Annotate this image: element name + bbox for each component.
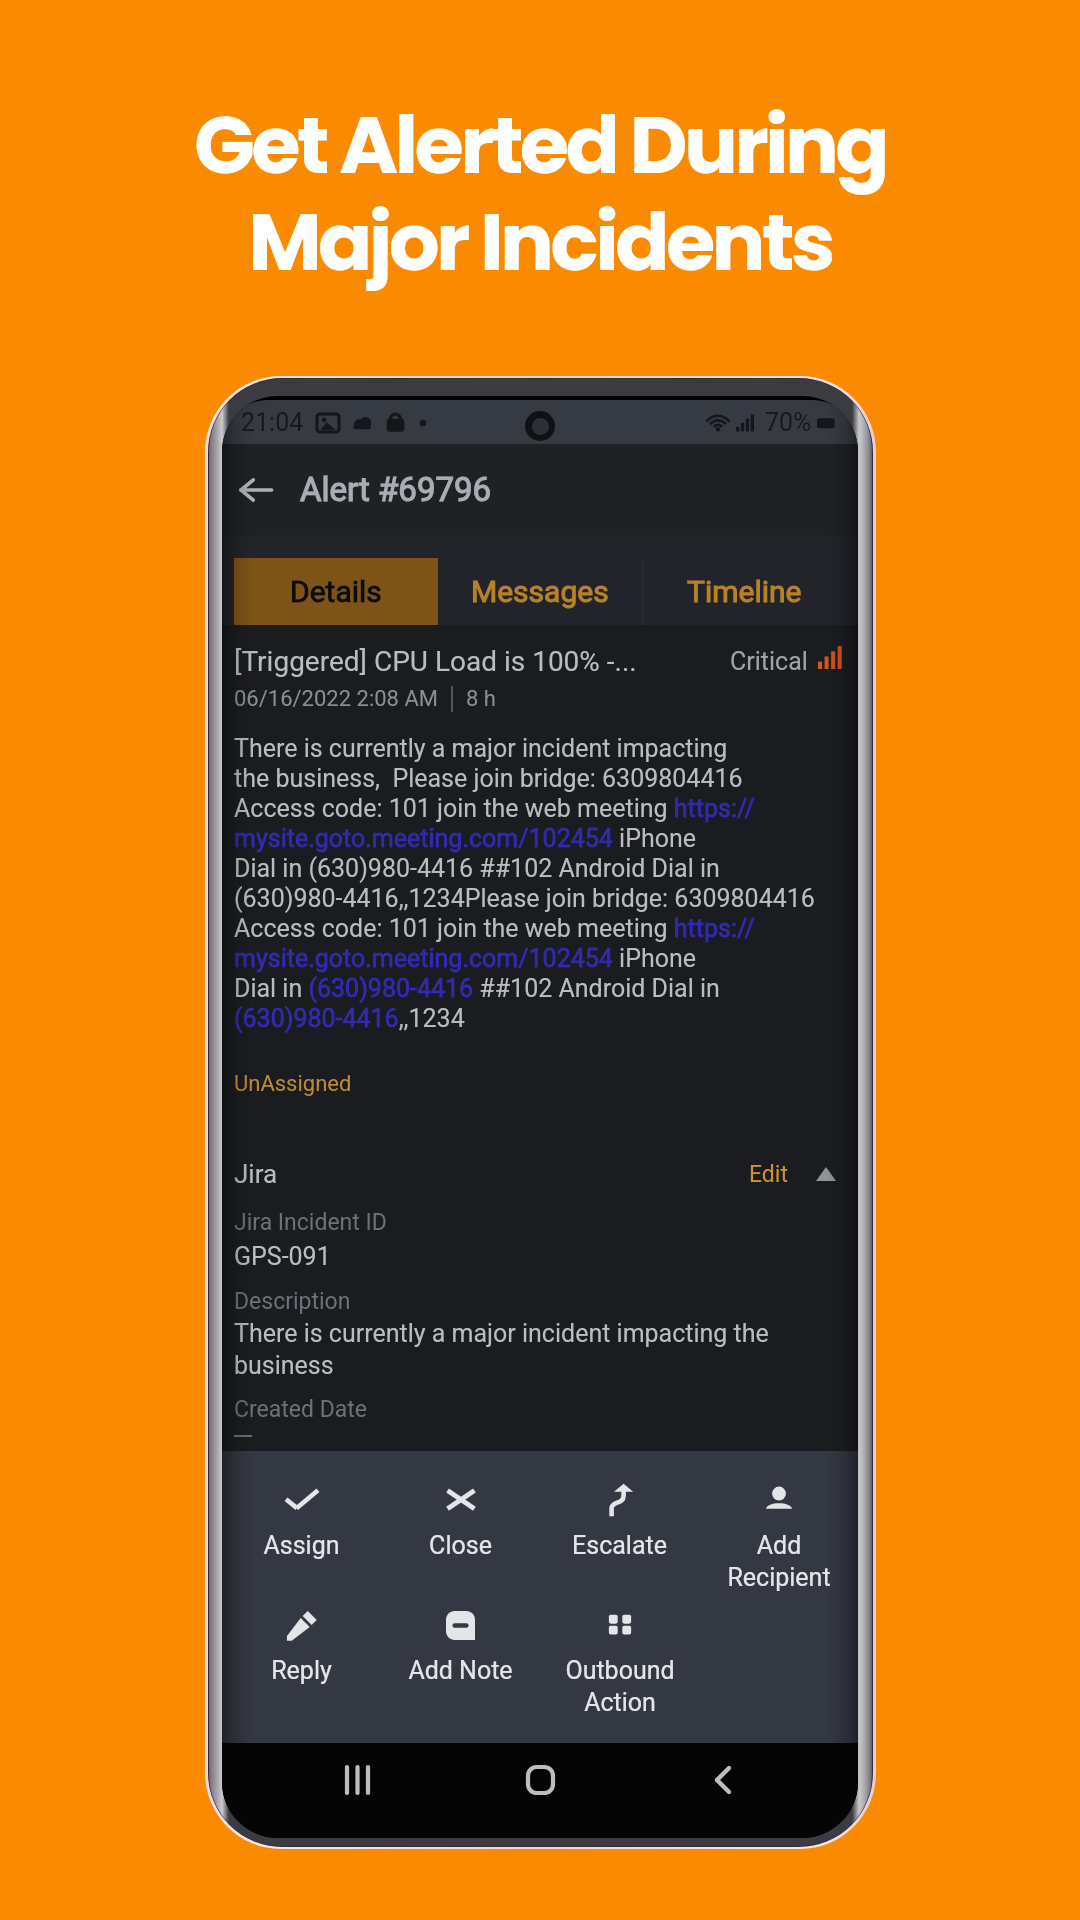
button[interactable]: Add Note [381,1608,540,1685]
button[interactable]: Escalate [540,1483,699,1560]
button[interactable]: Home [512,1752,568,1808]
staticText: Created Date [234,1396,367,1423]
staticText: Outbound Action [565,1656,675,1717]
staticText: 70% [765,408,812,437]
staticText: 06/16/2022 2:08 AM [234,686,438,712]
staticText: Close [429,1531,492,1560]
staticText: Messages [471,574,609,609]
button[interactable]: Add Recipient [699,1483,858,1592]
staticText: Critical [730,647,808,676]
button[interactable]: Back [226,460,286,520]
staticText: Reply [271,1656,332,1685]
staticText: GPS-091 [234,1242,331,1271]
staticText: Add Note [408,1656,513,1685]
staticText: Escalate [572,1531,667,1560]
staticText: [Triggered] CPU Load is 100% -... [234,645,730,678]
staticText: UnAssigned [234,1071,352,1097]
button[interactable]: Recent apps [329,1752,385,1808]
staticText: There is currently a major incident impa… [234,734,815,1033]
staticText: Details [290,574,382,609]
staticText: Description [234,1288,351,1315]
staticText: There is currently a major incident impa… [234,1319,846,1380]
button[interactable]: Assign [222,1483,381,1560]
staticText: Jira [234,1159,749,1189]
staticText: 8 h [466,686,496,712]
button[interactable]: Outbound Action [540,1608,699,1717]
staticText: Get Alerted During Major Incidents [0,89,1080,298]
button[interactable]: Details [234,558,438,625]
staticText: Jira Incident ID [234,1209,387,1236]
button[interactable]: Back [695,1752,751,1808]
staticText: Alert #69796 [300,470,492,509]
button[interactable]: Messages [438,558,642,625]
button[interactable]: Timeline [642,558,846,625]
other: Collapse [816,1167,836,1181]
button[interactable]: Reply [222,1608,381,1685]
button[interactable]: Edit [749,1161,788,1188]
staticText: Add Recipient [727,1531,831,1592]
staticText: 21:04 [241,408,304,437]
staticText: Assign [263,1531,340,1560]
button[interactable]: Close [381,1483,540,1560]
staticText: Timeline [687,574,802,609]
